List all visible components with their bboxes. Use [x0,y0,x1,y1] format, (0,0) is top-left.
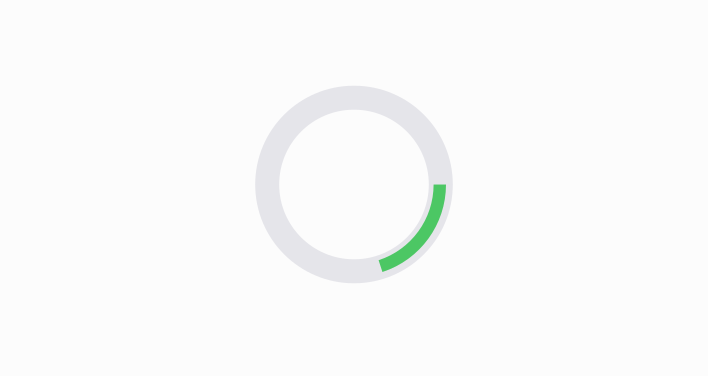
progressIndicator: 20 percent [244,74,464,294]
